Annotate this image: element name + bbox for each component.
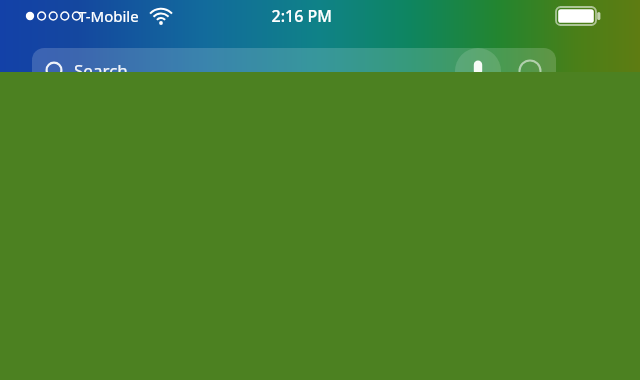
button[interactable]: Search <box>32 48 452 72</box>
button[interactable]: Voice search <box>455 48 501 72</box>
button[interactable]: Search by image <box>512 48 552 72</box>
